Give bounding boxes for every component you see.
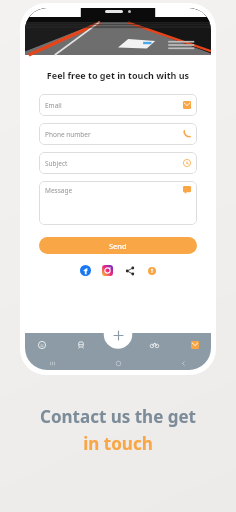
staticText: in touch xyxy=(83,432,153,455)
button[interactable]: Home xyxy=(35,338,48,351)
button[interactable]: Share xyxy=(123,264,136,277)
button[interactable]: Phone number xyxy=(39,123,197,145)
staticText: Message xyxy=(45,186,73,195)
button[interactable]: Home xyxy=(115,360,122,367)
button[interactable]: Facebook xyxy=(79,264,92,277)
button[interactable]: Subject xyxy=(39,152,197,174)
staticText: Contact us the get xyxy=(40,405,196,428)
button[interactable]: Email xyxy=(39,94,197,116)
button[interactable]: Instagram xyxy=(101,264,114,277)
button[interactable]: Message xyxy=(39,181,197,225)
button[interactable]: Back xyxy=(180,360,187,367)
staticText: 17:28 xyxy=(32,10,47,17)
button[interactable]: Add xyxy=(108,325,128,345)
button[interactable]: More xyxy=(145,264,158,277)
staticText: Email xyxy=(45,101,62,110)
button[interactable]: Bike xyxy=(148,338,161,351)
button[interactable]: Mail xyxy=(188,338,201,351)
staticText: Phone number xyxy=(45,130,91,139)
button[interactable]: Transit xyxy=(74,338,87,351)
staticText: Subject xyxy=(45,159,68,168)
button[interactable]: Recents xyxy=(49,360,56,367)
staticText: Feel free to get in touch with us xyxy=(25,69,211,81)
staticText: Send xyxy=(109,241,127,251)
button[interactable]: Send xyxy=(39,237,197,254)
